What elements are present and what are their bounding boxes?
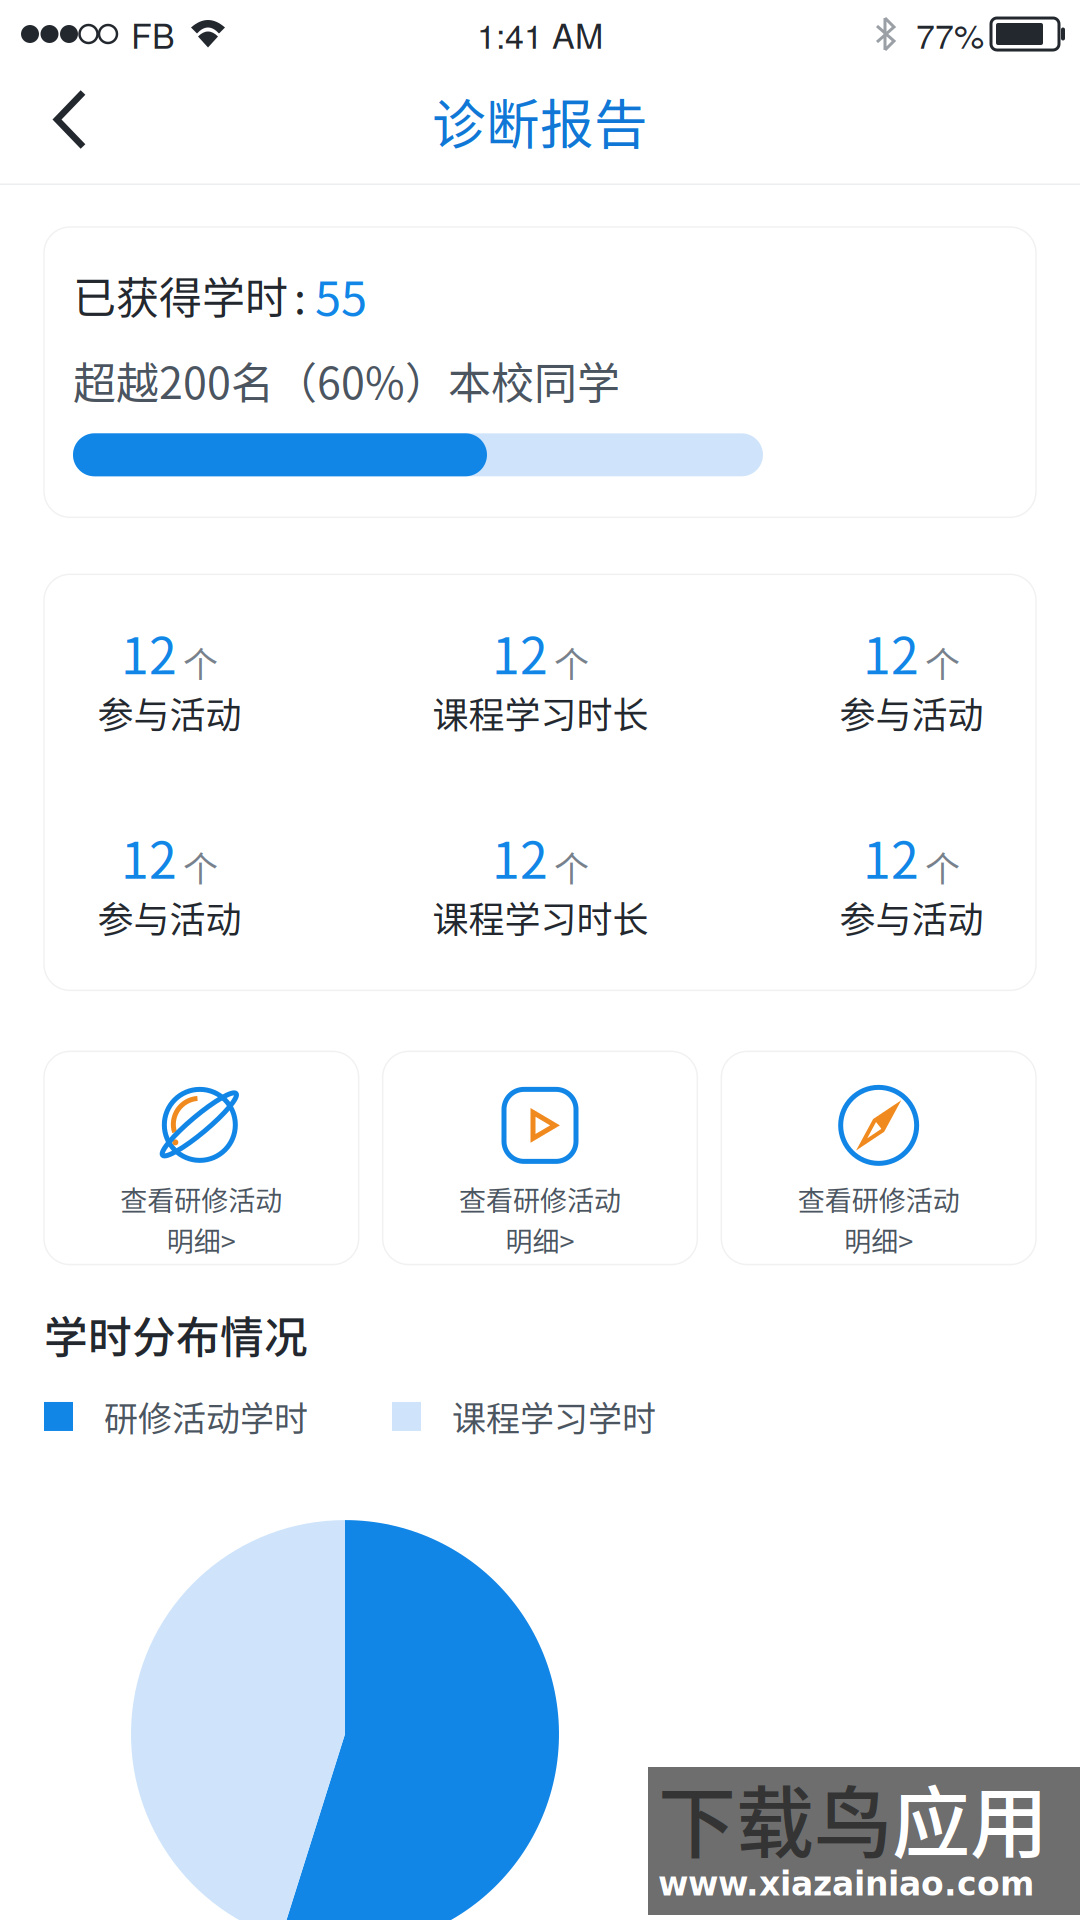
staticText: 12: [863, 821, 919, 893]
staticText: 课程学习时长: [432, 891, 648, 943]
staticText: 个: [554, 637, 589, 688]
staticText: FB: [131, 10, 175, 58]
staticText: 1:41 AM: [477, 10, 603, 58]
staticText: 诊断报告: [432, 82, 648, 160]
staticText: 参与活动: [839, 687, 983, 739]
staticText: 个: [183, 842, 218, 892]
staticText: 12: [121, 616, 177, 689]
staticText: 12: [863, 616, 919, 689]
button[interactable]: Back: [0, 81, 115, 171]
staticText: 查看研修活动: [120, 1179, 282, 1218]
staticText: 超越200名（60%）本校同学: [73, 349, 620, 411]
staticText: 下载鸟: [658, 1761, 892, 1874]
staticText: 个: [554, 842, 589, 892]
staticText: 明细>: [167, 1220, 236, 1260]
staticText: 已获得学时: [73, 264, 288, 326]
staticText: 12: [492, 821, 548, 893]
staticText: 55: [315, 261, 367, 329]
button[interactable]: 查看研修活动: [44, 1051, 359, 1265]
staticText: 查看研修活动: [798, 1179, 960, 1218]
staticText: 课程学习时长: [432, 687, 648, 739]
staticText: 明细>: [844, 1220, 913, 1260]
staticText: 77%: [916, 10, 984, 58]
staticText: 研修活动学时: [104, 1392, 308, 1441]
staticText: 个: [183, 637, 218, 688]
staticText: 12: [492, 616, 548, 689]
button[interactable]: 查看研修活动: [721, 1051, 1036, 1265]
staticText: 参与活动: [97, 891, 241, 943]
button[interactable]: 查看研修活动: [383, 1051, 697, 1265]
staticText: 明细>: [505, 1220, 574, 1260]
staticText: 学时分布情况: [44, 1303, 308, 1366]
staticText: 个: [925, 637, 960, 688]
staticText: www.xiazainiao.com: [658, 1865, 1034, 1903]
staticText: 参与活动: [839, 891, 983, 943]
staticText: :: [294, 264, 306, 326]
staticText: 应用: [892, 1761, 1048, 1874]
staticText: 课程学习学时: [452, 1392, 656, 1441]
staticText: 12: [121, 821, 177, 893]
staticText: 查看研修活动: [459, 1179, 621, 1218]
staticText: 参与活动: [97, 687, 241, 739]
staticText: 个: [925, 842, 960, 892]
